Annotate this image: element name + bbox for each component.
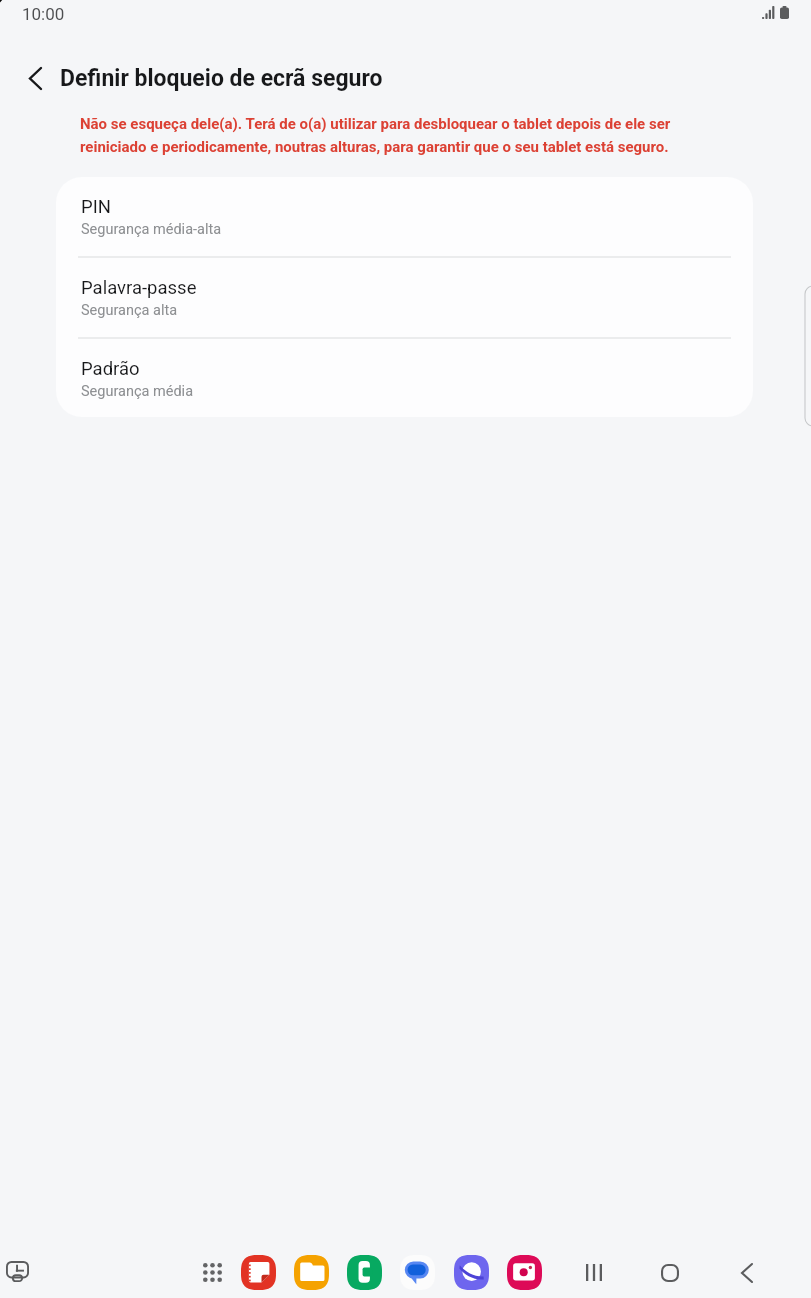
button[interactable]: Padrão bbox=[56, 339, 753, 417]
staticText: Padrão bbox=[81, 358, 140, 380]
staticText: Segurança média bbox=[81, 383, 194, 400]
button[interactable]: PIN bbox=[56, 177, 753, 256]
button[interactable]: Palavra-passe bbox=[56, 258, 753, 337]
staticText: Segurança alta bbox=[81, 302, 178, 319]
button[interactable]: Home bbox=[646, 1249, 693, 1296]
button[interactable]: Phone bbox=[338, 1246, 390, 1298]
button[interactable]: Back bbox=[723, 1249, 770, 1296]
button[interactable]: Samsung Notes bbox=[232, 1246, 284, 1298]
staticText: PIN bbox=[81, 196, 111, 218]
button[interactable]: Internet bbox=[445, 1246, 497, 1298]
button[interactable]: Recent apps bbox=[570, 1249, 617, 1296]
button[interactable]: Messages bbox=[391, 1246, 443, 1298]
button[interactable]: Back bbox=[7, 50, 63, 106]
staticText: Não se esqueça dele(a). Terá de o(a) uti… bbox=[80, 115, 685, 156]
staticText: Palavra-passe bbox=[81, 277, 197, 299]
button[interactable]: DeX mode bbox=[0, 1248, 40, 1294]
staticText: Definir bloqueio de ecrã seguro bbox=[60, 65, 383, 92]
button[interactable]: My Files bbox=[285, 1246, 337, 1298]
staticText: Segurança média-alta bbox=[81, 221, 222, 238]
staticText: 10:00 bbox=[22, 4, 65, 24]
button[interactable]: Apps bbox=[189, 1249, 235, 1295]
button[interactable]: Camera bbox=[498, 1246, 550, 1298]
